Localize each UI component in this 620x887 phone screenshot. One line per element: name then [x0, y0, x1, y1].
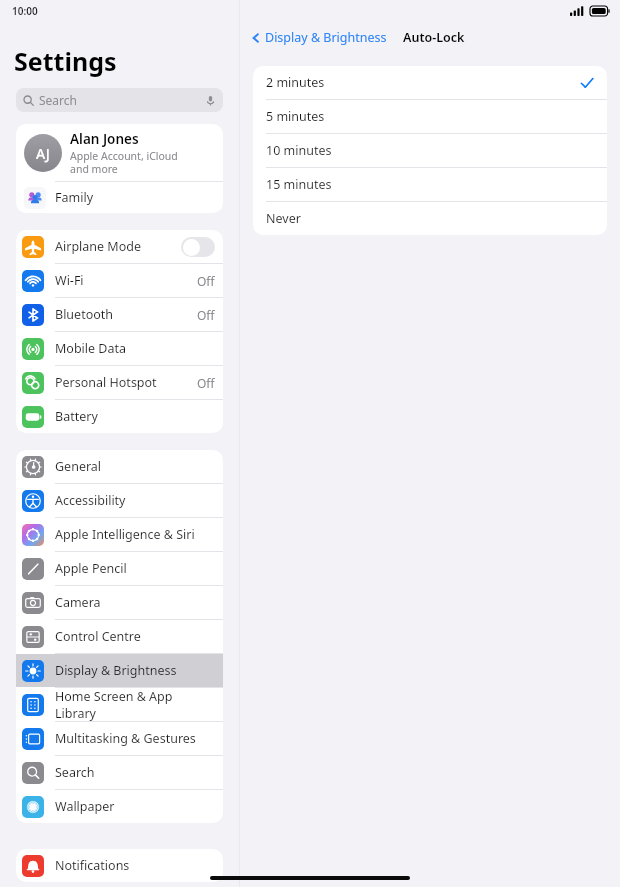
- button[interactable]: Multitasking & Gestures: [16, 722, 223, 755]
- staticText: Display & Brightness: [55, 662, 177, 679]
- button[interactable]: 5 minutes: [253, 100, 607, 133]
- button[interactable]: Search: [16, 756, 223, 789]
- staticText: Home Screen & App Library: [55, 688, 215, 721]
- button[interactable]: Bluetooth: [16, 298, 223, 331]
- staticText: AJ: [36, 144, 50, 163]
- button[interactable]: Notifications: [16, 849, 223, 882]
- staticText: Off: [197, 273, 215, 289]
- staticText: Bluetooth: [55, 306, 114, 323]
- staticText: 15 minutes: [266, 176, 332, 193]
- button[interactable]: Camera: [16, 586, 223, 619]
- button[interactable]: Mobile Data: [16, 332, 223, 365]
- staticText: Accessibility: [55, 492, 126, 509]
- staticText: Apple Account, iCloud and more: [70, 149, 178, 176]
- button[interactable]: 15 minutes: [253, 168, 607, 201]
- staticText: Display & Brightness: [265, 29, 387, 46]
- staticText: General: [55, 458, 102, 475]
- staticText: Search: [55, 764, 95, 781]
- button[interactable]: Family: [16, 182, 223, 213]
- staticText: Multitasking & Gestures: [55, 730, 196, 747]
- staticText: Apple Intelligence & Siri: [55, 526, 195, 543]
- staticText: Battery: [55, 408, 98, 425]
- button[interactable]: 10 minutes: [253, 134, 607, 167]
- button[interactable]: Apple Pencil: [16, 552, 223, 585]
- staticText: Wallpaper: [55, 798, 115, 815]
- staticText: Settings: [14, 44, 117, 78]
- button[interactable]: Home Screen & App Library: [16, 688, 223, 721]
- button[interactable]: Search: [16, 88, 223, 112]
- staticText: Never: [266, 210, 301, 227]
- staticText: Auto-Lock: [403, 29, 465, 46]
- staticText: 10 minutes: [266, 142, 332, 159]
- button[interactable]: Control Centre: [16, 620, 223, 653]
- button[interactable]: Wallpaper: [16, 790, 223, 823]
- button[interactable]: Personal Hotspot: [16, 366, 223, 399]
- staticText: 2 minutes: [266, 74, 325, 91]
- button[interactable]: Airplane Mode toggle: [181, 237, 215, 257]
- staticText: Personal Hotspot: [55, 374, 157, 391]
- button[interactable]: 2 minutes: [253, 66, 607, 99]
- button[interactable]: AJ: [16, 124, 223, 181]
- button[interactable]: Display & Brightness: [248, 29, 389, 46]
- staticText: 10:00: [12, 4, 38, 18]
- staticText: Notifications: [55, 857, 130, 874]
- staticText: Off: [197, 307, 215, 323]
- staticText: Wi-Fi: [55, 272, 84, 289]
- staticText: Airplane Mode: [55, 238, 141, 255]
- staticText: Search: [39, 92, 77, 108]
- button[interactable]: Apple Intelligence & Siri: [16, 518, 223, 551]
- button[interactable]: Battery: [16, 400, 223, 433]
- button[interactable]: Airplane Mode: [16, 230, 223, 263]
- staticText: Alan Jones: [70, 130, 139, 148]
- staticText: Family: [55, 189, 94, 206]
- button[interactable]: Never: [253, 202, 607, 235]
- staticText: Camera: [55, 594, 101, 611]
- button[interactable]: Display & Brightness: [16, 654, 223, 687]
- staticText: Apple Pencil: [55, 560, 127, 577]
- staticText: Control Centre: [55, 628, 141, 645]
- button[interactable]: Wi-Fi: [16, 264, 223, 297]
- staticText: Off: [197, 375, 215, 391]
- button[interactable]: Accessibility: [16, 484, 223, 517]
- staticText: Mobile Data: [55, 340, 127, 357]
- staticText: 5 minutes: [266, 108, 325, 125]
- button[interactable]: General: [16, 450, 223, 483]
